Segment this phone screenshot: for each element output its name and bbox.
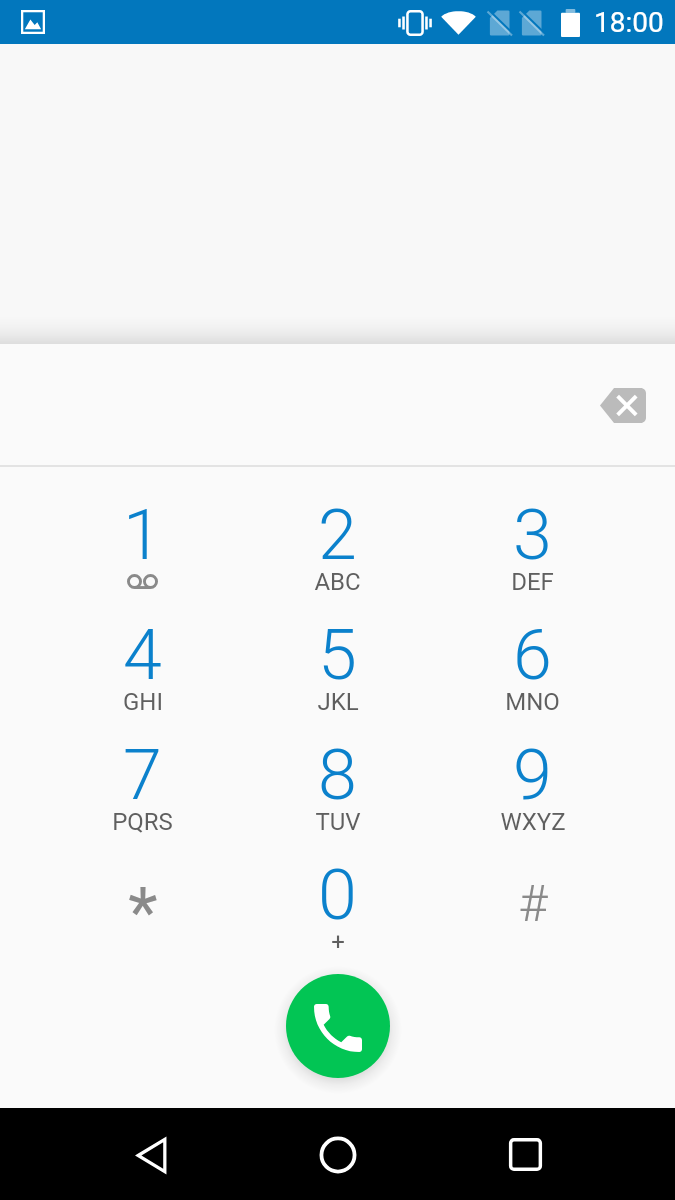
staticText: 3 bbox=[513, 494, 552, 576]
staticText: 4 bbox=[123, 614, 162, 696]
staticText: 6 bbox=[513, 614, 552, 696]
staticText: 9 bbox=[513, 734, 552, 816]
button[interactable]: 1 bbox=[45, 494, 240, 614]
button[interactable]: 4 bbox=[45, 614, 240, 734]
button[interactable]: Delete bbox=[589, 371, 657, 439]
staticText: # bbox=[518, 875, 548, 934]
staticText: 1 bbox=[123, 494, 162, 576]
button[interactable]: 7 bbox=[45, 734, 240, 854]
staticText: 8 bbox=[318, 734, 357, 816]
staticText: 5 bbox=[318, 614, 357, 696]
button[interactable]: 9 bbox=[435, 734, 630, 854]
staticText: PQRS bbox=[112, 808, 173, 836]
button[interactable]: 3 bbox=[435, 494, 630, 614]
button[interactable]: Recents bbox=[480, 1108, 570, 1200]
staticText: 18:00 bbox=[594, 6, 664, 39]
staticText: * bbox=[128, 873, 158, 953]
staticText: 7 bbox=[123, 734, 162, 816]
button[interactable]: 5 bbox=[240, 614, 435, 734]
staticText: 2 bbox=[318, 494, 357, 576]
button[interactable]: Home bbox=[292, 1108, 383, 1200]
button[interactable]: 0 bbox=[240, 854, 435, 974]
button[interactable]: * bbox=[45, 854, 240, 974]
button[interactable]: Call bbox=[286, 974, 390, 1078]
staticText: TUV bbox=[315, 808, 361, 836]
staticText: ABC bbox=[314, 568, 361, 596]
button[interactable]: 2 bbox=[240, 494, 435, 614]
staticText: MNO bbox=[505, 688, 560, 716]
staticText: WXYZ bbox=[500, 808, 566, 836]
staticText: JKL bbox=[317, 688, 359, 716]
staticText: GHI bbox=[123, 688, 163, 716]
button[interactable]: Back bbox=[106, 1108, 196, 1200]
staticText: + bbox=[331, 928, 345, 956]
staticText: 0 bbox=[318, 854, 357, 936]
button[interactable]: 8 bbox=[240, 734, 435, 854]
button[interactable]: 6 bbox=[435, 614, 630, 734]
button[interactable]: # bbox=[435, 854, 630, 974]
staticText: DEF bbox=[511, 568, 554, 596]
